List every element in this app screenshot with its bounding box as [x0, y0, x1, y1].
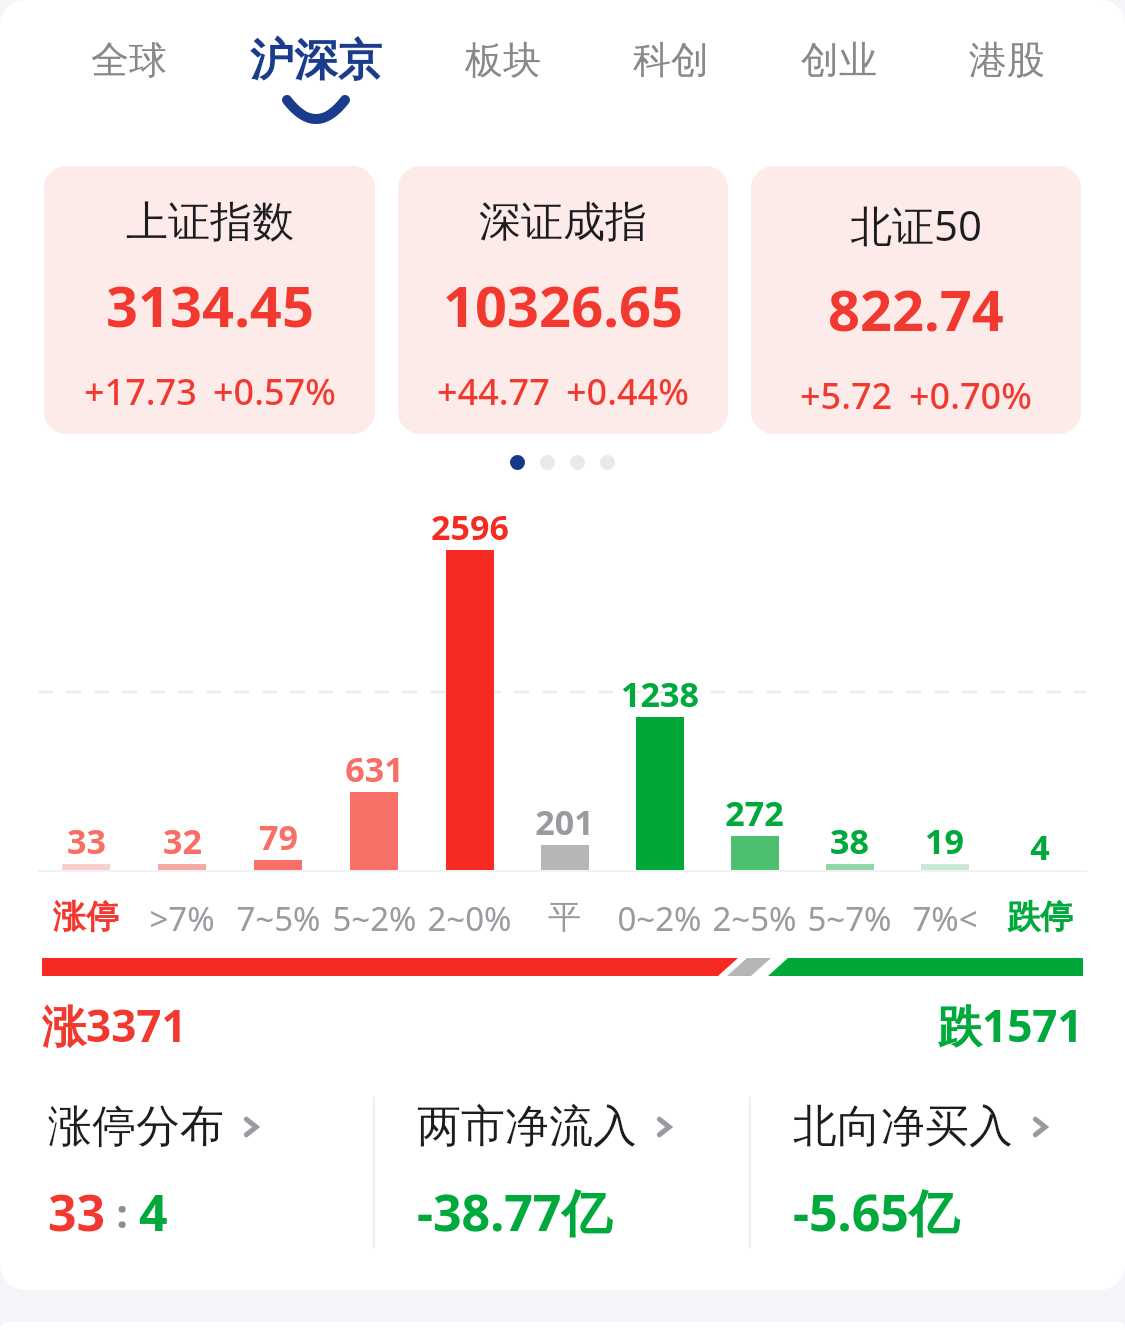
staticText: 创业	[801, 36, 877, 84]
staticText: +17.73	[84, 367, 197, 416]
button[interactable]: 2596	[422, 500, 517, 930]
staticText: 7%<	[912, 896, 978, 941]
staticText: 822.74	[828, 271, 1004, 347]
staticText: 38	[830, 818, 869, 864]
button[interactable]: 北证50	[751, 166, 1081, 434]
staticText: 33	[67, 818, 106, 864]
staticText: 跌1571	[938, 995, 1083, 1055]
staticText: 33	[48, 1178, 106, 1246]
staticText: -38.77亿	[417, 1178, 612, 1246]
staticText: :	[106, 1185, 139, 1239]
staticText: 79	[259, 814, 298, 860]
staticText: 2~0%	[427, 896, 512, 941]
staticText: 631	[345, 746, 404, 792]
staticText: 上证指数	[126, 196, 294, 249]
staticText: 10326.65	[443, 267, 683, 343]
staticText: 港股	[969, 36, 1045, 84]
staticText: 272	[725, 790, 784, 836]
button[interactable]: 创业	[755, 0, 923, 136]
staticText: 北证50	[850, 196, 983, 253]
staticText: 北向净买入	[793, 1099, 1013, 1154]
button[interactable]: 两市净流入	[375, 1090, 749, 1255]
staticText: 2~5%	[712, 896, 797, 941]
staticText: +44.77	[437, 367, 550, 416]
staticText: 平	[548, 896, 581, 938]
staticText: -5.65亿	[793, 1178, 959, 1246]
button[interactable]: 全球	[44, 0, 213, 136]
staticText: 深证成指	[479, 196, 647, 249]
button[interactable]: 201	[517, 500, 612, 930]
button[interactable]: 深证成指	[398, 166, 728, 434]
staticText: +5.72	[800, 371, 893, 420]
staticText: 涨停分布	[48, 1099, 224, 1154]
staticText: 两市净流入	[417, 1099, 637, 1154]
staticText: 0~2%	[617, 896, 702, 941]
staticText: 4	[139, 1178, 168, 1246]
staticText: 201	[535, 799, 594, 845]
button[interactable]: 1238	[612, 500, 707, 930]
staticText: +0.70%	[909, 371, 1032, 420]
staticText: 32	[163, 818, 202, 864]
staticText: 全球	[91, 36, 167, 84]
button[interactable]: 631	[326, 500, 422, 930]
staticText: 4	[1030, 824, 1050, 870]
button[interactable]: 4	[992, 500, 1087, 930]
staticText: 7~5%	[236, 896, 321, 941]
button[interactable]: 涨停分布	[0, 1090, 373, 1255]
staticText: 板块	[465, 36, 541, 84]
staticText: +0.44%	[566, 367, 689, 416]
staticText: >7%	[149, 896, 215, 941]
staticText: 沪深京	[250, 33, 382, 88]
staticText: 5~7%	[807, 896, 892, 941]
staticText: 涨停	[53, 896, 119, 938]
button[interactable]: 272	[707, 500, 802, 930]
staticText: +0.57%	[213, 367, 336, 416]
button[interactable]: 港股	[923, 0, 1091, 136]
other: 北向净买入	[1027, 1114, 1053, 1140]
staticText: 3134.45	[106, 267, 314, 343]
button[interactable]: 上证指数	[44, 166, 375, 434]
other: 两市净流入	[651, 1114, 677, 1140]
button[interactable]: 北向净买入	[751, 1090, 1125, 1255]
staticText: 5~2%	[332, 896, 417, 941]
other: 涨停分布	[238, 1114, 264, 1140]
staticText: 1238	[621, 671, 699, 717]
staticText: 科创	[633, 36, 709, 84]
button[interactable]: 科创	[587, 0, 755, 136]
staticText: 涨3371	[42, 995, 187, 1055]
button[interactable]: 33	[38, 500, 134, 930]
button[interactable]: 79	[230, 500, 326, 930]
button[interactable]: 32	[134, 500, 230, 930]
staticText: 跌停	[1007, 896, 1073, 938]
button[interactable]: 38	[802, 500, 897, 930]
staticText: 19	[925, 818, 964, 864]
button[interactable]: 沪深京	[213, 0, 419, 136]
button[interactable]: 板块	[419, 0, 587, 136]
button[interactable]: 19	[897, 500, 992, 930]
staticText: 2596	[431, 504, 509, 550]
